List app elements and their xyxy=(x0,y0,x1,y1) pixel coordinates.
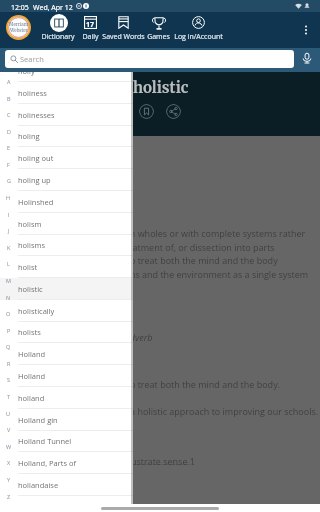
staticText: I xyxy=(8,211,10,218)
staticText: relating to or concerned with wholes or … xyxy=(14,227,306,239)
staticText: than with the analysis of, treatment of,… xyxy=(14,241,275,253)
button[interactable]: Holland gin xyxy=(0,409,133,431)
staticText: Q xyxy=(6,343,11,350)
button[interactable]: Log in/Account xyxy=(173,12,223,46)
staticText: the school board has taken a holistic ap… xyxy=(14,405,319,417)
staticText: holinesses xyxy=(18,110,55,120)
button[interactable]: Voice search xyxy=(299,50,315,66)
button[interactable]: holistically xyxy=(0,300,133,322)
staticText: K xyxy=(7,244,11,251)
staticText: Holinshed xyxy=(18,197,54,207)
button[interactable]: holists xyxy=(0,321,133,343)
button[interactable]: Games xyxy=(146,12,170,46)
staticText: O xyxy=(6,310,11,317)
button[interactable]: hollandaise xyxy=(0,474,133,496)
staticText: S xyxy=(7,376,11,383)
staticText: Merriam xyxy=(9,22,29,28)
staticText: P xyxy=(7,327,11,334)
button[interactable]: Share xyxy=(166,104,181,119)
button[interactable]: holly xyxy=(0,60,133,82)
button[interactable]: Holinshed xyxy=(0,191,133,213)
staticText: M xyxy=(6,277,11,284)
staticText: holing up xyxy=(18,175,51,185)
staticText: 12:05 xyxy=(11,3,29,13)
staticText: T xyxy=(7,393,11,400)
staticText: holistic xyxy=(18,284,43,294)
staticText: Y xyxy=(7,476,11,483)
staticText: A xyxy=(7,78,11,85)
button[interactable]: Search xyxy=(5,50,294,68)
staticText: V xyxy=(7,426,11,433)
staticText: Holland Tunnel xyxy=(18,436,72,446)
button[interactable]: Save word xyxy=(139,104,154,119)
staticText: holistically xyxy=(18,306,55,316)
staticText: C xyxy=(7,111,11,118)
staticText: Holland xyxy=(18,371,46,381)
button[interactable]: holistic xyxy=(0,278,133,300)
staticText: holist xyxy=(18,262,38,272)
staticText: Holland, Parts of xyxy=(18,458,77,468)
staticText: holistic medicine attempts to treat both… xyxy=(14,378,281,390)
button[interactable]: holing up xyxy=(0,169,133,191)
staticText: L xyxy=(7,260,10,267)
button[interactable]: More options xyxy=(296,20,316,40)
button[interactable]: holing xyxy=(0,125,133,147)
button[interactable]: Holland, Parts of xyxy=(0,452,133,474)
staticText: holly xyxy=(18,66,35,76)
button[interactable]: holland xyxy=(0,387,133,409)
staticText: holistically hō-ˈlis-ti-k(ə-)lē , adverb xyxy=(14,331,153,343)
staticText: U xyxy=(6,410,11,417)
button[interactable]: Holland xyxy=(0,365,133,387)
button[interactable]: holinesses xyxy=(0,104,133,126)
staticText: B xyxy=(7,95,11,102)
staticText: Search xyxy=(20,54,44,64)
button[interactable]: holist xyxy=(0,256,133,278)
button[interactable]: Dictionary xyxy=(40,12,76,46)
staticText: holistic ecology views humans and the en… xyxy=(14,268,309,280)
staticText: holing out xyxy=(18,153,54,163)
staticText: G xyxy=(7,177,11,184)
staticText: F xyxy=(7,161,10,168)
button[interactable]: 17 xyxy=(81,12,100,46)
staticText: Dictionary xyxy=(41,32,75,42)
button[interactable]: holisms xyxy=(0,234,133,256)
button[interactable]: Holland Tunnel xyxy=(0,430,133,452)
staticText: X xyxy=(7,459,11,466)
button[interactable]: Merriam-Webster home xyxy=(6,15,31,40)
staticText: holistic medicine attempts to treat both… xyxy=(14,254,278,266)
staticText: Saved Words xyxy=(102,32,145,42)
staticText: Daily xyxy=(82,32,99,42)
button[interactable]: Saved Words xyxy=(101,12,145,46)
staticText: J xyxy=(8,227,10,234)
staticText: holisms xyxy=(18,240,45,250)
staticText: Games xyxy=(147,32,170,42)
staticText: holing xyxy=(18,131,40,141)
staticText: holists xyxy=(18,327,41,337)
staticText: Holland xyxy=(18,349,46,359)
staticText: Holland gin xyxy=(18,415,58,425)
staticText: holland xyxy=(18,393,45,403)
staticText: 17 xyxy=(86,20,95,30)
button[interactable]: holing out xyxy=(0,147,133,169)
staticText: Z xyxy=(7,493,11,500)
button[interactable]: hollandaise sauce xyxy=(0,496,133,512)
staticText: D xyxy=(7,128,11,135)
staticText: W xyxy=(6,443,12,450)
staticText: holistic xyxy=(133,78,189,97)
staticText: These example sentences illustrate sense… xyxy=(14,455,195,467)
button[interactable]: holism xyxy=(0,213,133,235)
staticText: R xyxy=(7,360,11,367)
staticText: E xyxy=(7,144,11,151)
button[interactable]: holiness xyxy=(0,82,133,104)
button[interactable]: Holland xyxy=(0,343,133,365)
staticText: H xyxy=(6,194,11,201)
staticText: holiness xyxy=(18,88,47,98)
staticText: holism xyxy=(18,219,42,229)
staticText: Webster xyxy=(10,28,28,34)
staticText: Wed, Apr 12 xyxy=(33,3,73,13)
staticText: Log in/Account xyxy=(174,32,223,42)
staticText: hollandaise xyxy=(18,480,59,490)
staticText: N xyxy=(6,294,11,301)
